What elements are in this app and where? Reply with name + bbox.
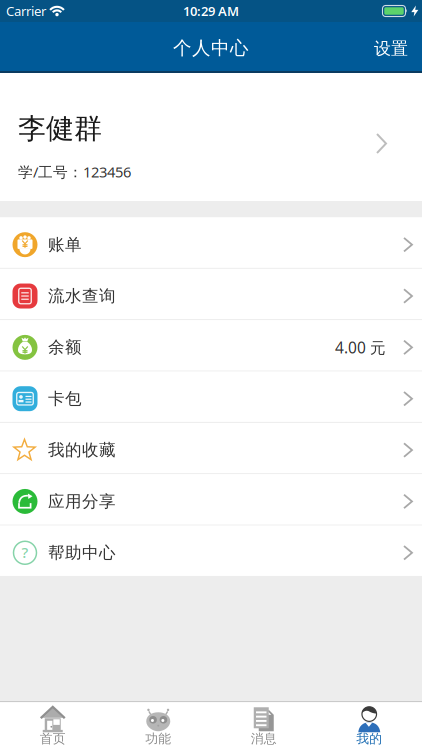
button[interactable]: 我的 — [316, 702, 422, 750]
button[interactable]: 功能 — [105, 702, 211, 750]
staticText: 学/工号：123456 — [18, 162, 131, 181]
staticText: 首页 — [40, 731, 66, 746]
staticText: 卡包 — [48, 389, 82, 409]
staticText: 帮助中心 — [48, 543, 116, 563]
button[interactable]: ? — [0, 526, 422, 576]
staticText: ? — [21, 542, 28, 562]
button[interactable]: 账单 — [0, 217, 422, 268]
staticText: 功能 — [145, 731, 171, 746]
button[interactable]: 余额 — [0, 320, 422, 371]
button[interactable]: 设置 — [374, 36, 422, 57]
button[interactable]: 卡包 — [0, 372, 422, 422]
staticText: 流水查询 — [48, 286, 116, 306]
button[interactable]: 流水查询 — [0, 269, 422, 319]
staticText: 个人中心 — [173, 37, 249, 59]
button[interactable]: 李健群 — [0, 73, 422, 201]
staticText: 消息 — [251, 731, 277, 746]
button[interactable]: 首页 — [0, 702, 105, 750]
staticText: 李健群 — [18, 112, 102, 146]
button[interactable]: 应用分享 — [0, 474, 422, 525]
staticText: 账单 — [48, 234, 82, 255]
button[interactable]: 消息 — [211, 702, 316, 750]
staticText: 我的 — [356, 731, 382, 746]
staticText: 设置 — [374, 38, 408, 59]
staticText: 4.00 元 — [335, 337, 386, 358]
staticText: 余额 — [48, 337, 82, 357]
staticText: 应用分享 — [48, 491, 116, 512]
staticText: 我的收藏 — [48, 440, 116, 460]
staticText: 10:29 AM — [183, 2, 239, 20]
button[interactable]: 我的收藏 — [0, 423, 422, 473]
staticText: Carrier — [6, 2, 46, 20]
